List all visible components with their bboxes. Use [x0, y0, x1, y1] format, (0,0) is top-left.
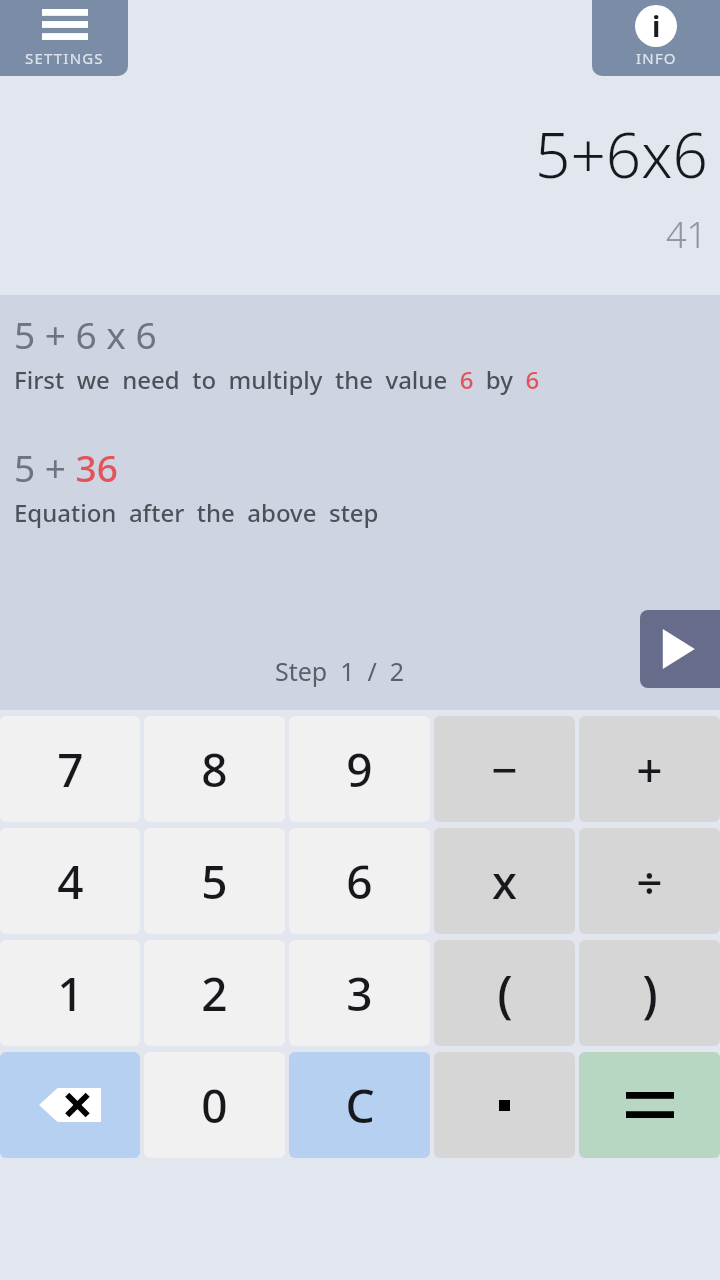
- button[interactable]: C: [289, 1052, 430, 1158]
- button[interactable]: +: [579, 716, 720, 822]
- staticText: 6: [346, 850, 373, 913]
- button[interactable]: 8: [144, 716, 285, 822]
- staticText: x: [492, 850, 517, 913]
- staticText: (: [497, 959, 513, 1027]
- staticText: 5 + 6 x 6: [14, 309, 157, 359]
- staticText: 41: [666, 210, 708, 259]
- staticText: 8: [201, 738, 228, 801]
- button[interactable]: (: [434, 940, 575, 1046]
- button[interactable]: Next step: [640, 610, 720, 688]
- staticText: Step 1 / 2: [275, 654, 405, 688]
- staticText: i: [652, 7, 661, 45]
- staticText: ÷: [636, 850, 663, 913]
- staticText: SETTINGS: [25, 48, 104, 68]
- button[interactable]: Equals: [579, 1052, 720, 1158]
- staticText: −: [491, 738, 518, 801]
- button[interactable]: 5: [144, 828, 285, 934]
- staticText: 4: [57, 850, 84, 913]
- button[interactable]: 0: [144, 1052, 285, 1158]
- staticText: ): [642, 959, 658, 1027]
- button[interactable]: Info: [592, 0, 720, 76]
- button[interactable]: 6: [289, 828, 430, 934]
- staticText: 3: [346, 962, 373, 1025]
- button[interactable]: 9: [289, 716, 430, 822]
- button[interactable]: 1: [0, 940, 140, 1046]
- staticText: Equation after the above step: [14, 496, 379, 529]
- button[interactable]: ): [579, 940, 720, 1046]
- staticText: +: [636, 738, 663, 801]
- button[interactable]: −: [434, 716, 575, 822]
- staticText: 5: [201, 850, 228, 913]
- button[interactable]: ÷: [579, 828, 720, 934]
- staticText: First we need to multiply the value 6 by…: [14, 363, 540, 396]
- button[interactable]: x: [434, 828, 575, 934]
- staticText: INFO: [636, 48, 677, 68]
- button[interactable]: Settings: [0, 0, 128, 76]
- staticText: 5+6x6: [535, 112, 708, 196]
- staticText: 5 + 36: [14, 442, 118, 492]
- staticText: C: [345, 1074, 375, 1137]
- button[interactable]: Decimal point: [434, 1052, 575, 1158]
- staticText: 1: [57, 962, 84, 1025]
- button[interactable]: 7: [0, 716, 140, 822]
- button[interactable]: 2: [144, 940, 285, 1046]
- staticText: 2: [201, 962, 228, 1025]
- button[interactable]: 3: [289, 940, 430, 1046]
- staticText: 7: [57, 738, 84, 801]
- staticText: 0: [201, 1074, 228, 1137]
- staticText: 9: [346, 738, 373, 801]
- button[interactable]: 4: [0, 828, 140, 934]
- button[interactable]: Backspace: [0, 1052, 140, 1158]
